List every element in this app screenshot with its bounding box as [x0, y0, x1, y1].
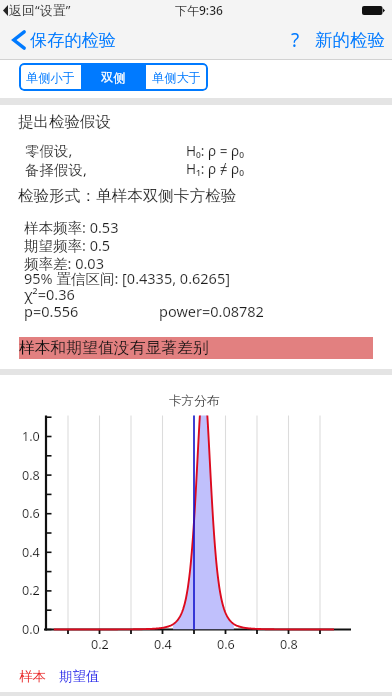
staticText: 0.2 [91, 636, 109, 653]
staticText: 频率差: 0.03 [24, 253, 104, 273]
staticText: 0.6 [22, 505, 40, 522]
staticText: 0.0 [22, 621, 40, 638]
button[interactable]: 双侧 [82, 63, 145, 91]
button[interactable]: 单侧大于 [146, 63, 207, 91]
staticText: 期望值 [59, 668, 100, 685]
staticText: 单侧小于 [26, 70, 75, 85]
staticText: 单侧大于 [152, 70, 201, 85]
button[interactable]: 帮助 [283, 20, 307, 59]
button[interactable]: 单侧小于 [19, 63, 81, 91]
staticText: 备择假设, [25, 159, 87, 179]
staticText: H₁: ρ ≠ ρ₀ [186, 159, 244, 178]
button[interactable]: 新的检验 [309, 20, 391, 59]
staticText: ? [291, 27, 300, 53]
staticText: 95% 置信区间: [0.4335, 0.6265] [24, 268, 230, 288]
staticText: 期望频率: 0.5 [24, 235, 111, 255]
staticText: p=0.556 [24, 301, 79, 321]
staticText: H₀: ρ = ρ₀ [186, 141, 244, 160]
staticText: 样本和期望值没有显著差别 [19, 338, 209, 358]
staticText: χ²=0.36 [24, 284, 75, 304]
staticText: 0.8 [22, 467, 40, 484]
staticText: 0.4 [22, 544, 40, 561]
staticText: 样本 [19, 668, 46, 685]
staticText: 样本频率: 0.53 [24, 217, 119, 237]
staticText: 0.4 [154, 636, 172, 653]
staticText: 1.0 [22, 428, 40, 445]
staticText: 提出检验假设 [18, 112, 111, 132]
staticText: 卡方分布 [169, 393, 220, 409]
staticText: 下午9:36 [175, 2, 223, 18]
staticText: 零假设, [25, 140, 73, 160]
staticText: 保存的检验 [30, 29, 116, 51]
staticText: 双侧 [101, 70, 126, 85]
staticText: 返回“设置” [9, 1, 71, 19]
staticText: power=0.08782 [159, 301, 264, 321]
staticText: 0.6 [217, 636, 235, 653]
staticText: 新的检验 [315, 29, 385, 51]
staticText: 检验形式：单样本双侧卡方检验 [18, 186, 237, 206]
button[interactable]: 保存的检验 [0, 20, 122, 59]
staticText: 0.2 [22, 582, 40, 599]
staticText: 0.8 [280, 636, 298, 653]
